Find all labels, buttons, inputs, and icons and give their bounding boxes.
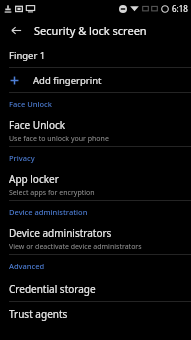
staticText: Device administrators <box>9 226 112 240</box>
staticText: Privacy <box>9 153 35 163</box>
staticText: Select apps for encryption <box>9 188 95 198</box>
button[interactable]: Back <box>5 19 27 41</box>
button[interactable]: App locker <box>0 169 191 200</box>
button[interactable]: Add fingerprint <box>0 68 191 92</box>
staticText: Add fingerprint <box>33 74 102 87</box>
staticText: Security & lock screen <box>34 23 147 38</box>
staticText: Device administration <box>9 207 88 217</box>
staticText: Face Unlock <box>9 99 52 109</box>
staticText: Use face to unlock your phone <box>9 134 109 144</box>
button[interactable]: Trust agents <box>0 302 191 326</box>
button[interactable]: Face Unlock <box>0 115 191 146</box>
staticText: Advanced <box>9 261 45 271</box>
staticText: Finger 1 <box>9 49 46 62</box>
staticText: Trust agents <box>9 307 68 321</box>
staticText: 6:18 <box>172 3 188 14</box>
button[interactable]: Device administrators <box>0 223 191 254</box>
staticText: Credential storage <box>9 282 96 296</box>
staticText: Face Unlock <box>9 118 66 132</box>
staticText: App locker <box>9 172 59 186</box>
staticText: View or deactivate device administrators <box>9 242 142 252</box>
button[interactable]: Credential storage <box>0 277 191 301</box>
